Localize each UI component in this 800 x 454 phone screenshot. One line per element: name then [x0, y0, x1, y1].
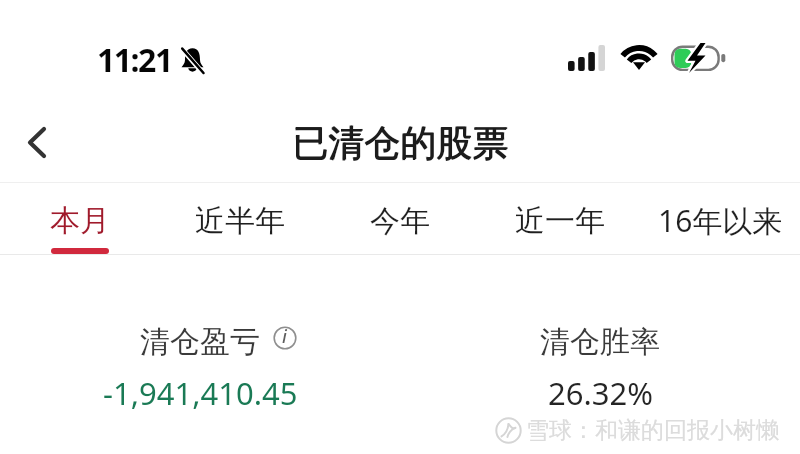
- button[interactable]: Info: [272, 325, 297, 350]
- button[interactable]: 今年: [320, 182, 480, 253]
- staticText: 今年: [370, 202, 430, 240]
- button[interactable]: 16年以来: [640, 182, 800, 253]
- staticText: 26.32%: [548, 372, 653, 414]
- button[interactable]: 本月: [0, 182, 160, 253]
- button[interactable]: 近一年: [480, 182, 640, 253]
- staticText: -1,941,410.45: [103, 372, 298, 414]
- staticText: 清仓胜率: [540, 323, 660, 361]
- staticText: 近一年: [515, 202, 605, 240]
- staticText: 已清仓的股票: [292, 120, 508, 165]
- staticText: 已清仓的股票: [293, 120, 509, 165]
- button[interactable]: Back: [0, 105, 74, 179]
- button[interactable]: 近半年: [160, 182, 320, 253]
- staticText: 雪球：和谦的回报小树懒: [526, 416, 779, 445]
- staticText: 已清仓的股票: [292, 121, 508, 166]
- staticText: 清仓盈亏: [140, 323, 260, 361]
- staticText: i: [282, 324, 287, 349]
- staticText: 16年以来: [658, 200, 783, 241]
- staticText: 近半年: [195, 202, 285, 240]
- staticText: 本月: [50, 202, 110, 240]
- staticText: 11:21: [97, 38, 172, 82]
